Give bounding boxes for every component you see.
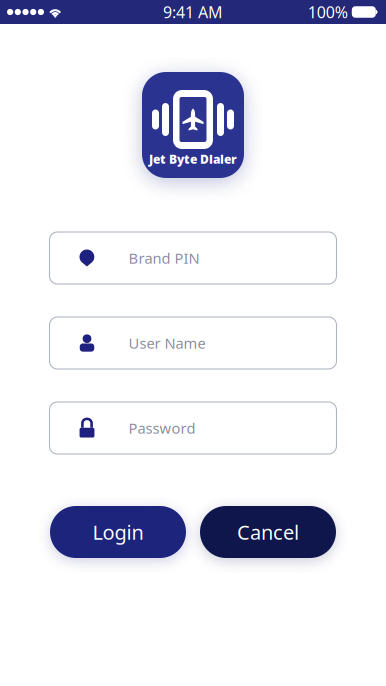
button[interactable]: User Name xyxy=(49,317,336,369)
button[interactable]: Cancel xyxy=(200,506,336,558)
button[interactable]: Password xyxy=(49,402,336,454)
staticText: User Name xyxy=(128,333,205,353)
staticText: 100% xyxy=(308,1,348,23)
staticText: 9:41 AM xyxy=(163,1,223,23)
staticText: Jet Byte Dialer xyxy=(149,151,237,167)
staticText: Brand PIN xyxy=(128,248,199,268)
button[interactable]: Brand PIN xyxy=(49,232,336,284)
staticText: Login xyxy=(92,519,143,545)
staticText: Password xyxy=(128,418,195,438)
button[interactable]: Login xyxy=(50,506,186,558)
staticText: Cancel xyxy=(237,519,299,545)
